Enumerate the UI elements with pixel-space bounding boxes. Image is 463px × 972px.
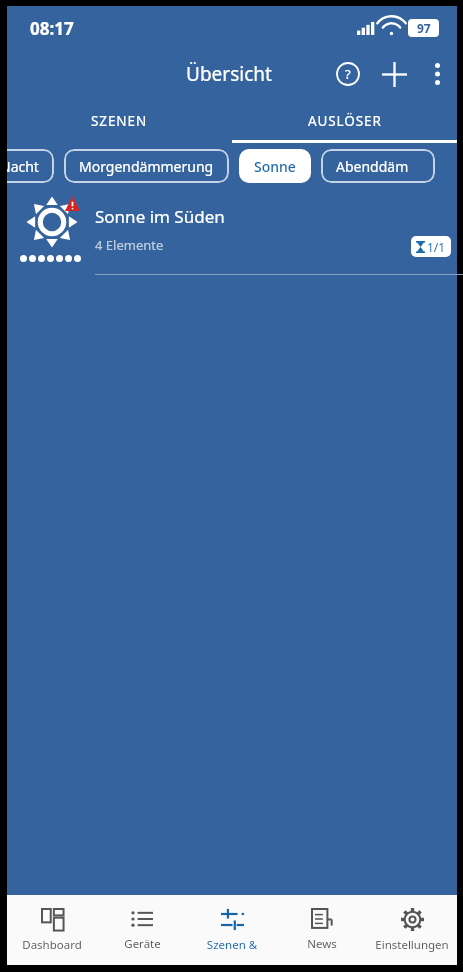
button[interactable]: Geräte (97, 895, 187, 965)
staticText: 4 Elemente (95, 236, 164, 254)
button[interactable]: SZENEN (7, 98, 232, 143)
button[interactable]: Sonne im Süden (7, 189, 457, 279)
button[interactable]: Nacht (7, 149, 54, 183)
button[interactable]: Add (371, 51, 417, 97)
button[interactable]: Abenddämmerung (321, 149, 435, 183)
staticText: AUSLÖSER (308, 112, 382, 130)
button[interactable]: Szenen & Auslöser (187, 895, 277, 965)
staticText: Morgendämmerung (79, 157, 214, 176)
staticText: 1/1 (427, 239, 446, 255)
staticText: Geräte (124, 936, 161, 952)
button[interactable]: More options (417, 54, 457, 94)
staticText: Abenddämmerung (336, 157, 420, 176)
button[interactable]: Help (325, 51, 371, 97)
button[interactable]: AUSLÖSER (232, 98, 457, 143)
button[interactable]: Dashboard (7, 895, 97, 965)
staticText: Übersicht (186, 61, 272, 87)
staticText: 08:17 (30, 17, 74, 40)
staticText: 97 (417, 20, 431, 36)
button[interactable]: Sonne (239, 149, 311, 183)
button[interactable]: News (277, 895, 367, 965)
staticText: Nacht (7, 157, 39, 176)
staticText: News (307, 936, 337, 952)
staticText: Sonne (254, 157, 296, 176)
staticText: Einstellungen (375, 937, 449, 953)
button[interactable]: Einstellungen (367, 895, 457, 965)
staticText: SZENEN (91, 112, 148, 130)
staticText: ? (345, 65, 351, 83)
staticText: Dashboard (22, 937, 82, 953)
staticText: Sonne im Süden (95, 205, 225, 228)
staticText: Szenen & Auslöser (187, 937, 277, 953)
button[interactable]: Morgendämmerung (64, 149, 229, 183)
